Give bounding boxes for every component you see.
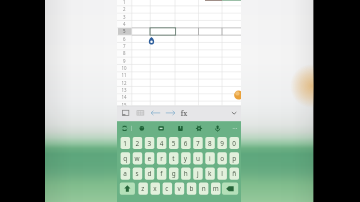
button[interactable]: Spreadsheet video	[0, 0, 360, 202]
